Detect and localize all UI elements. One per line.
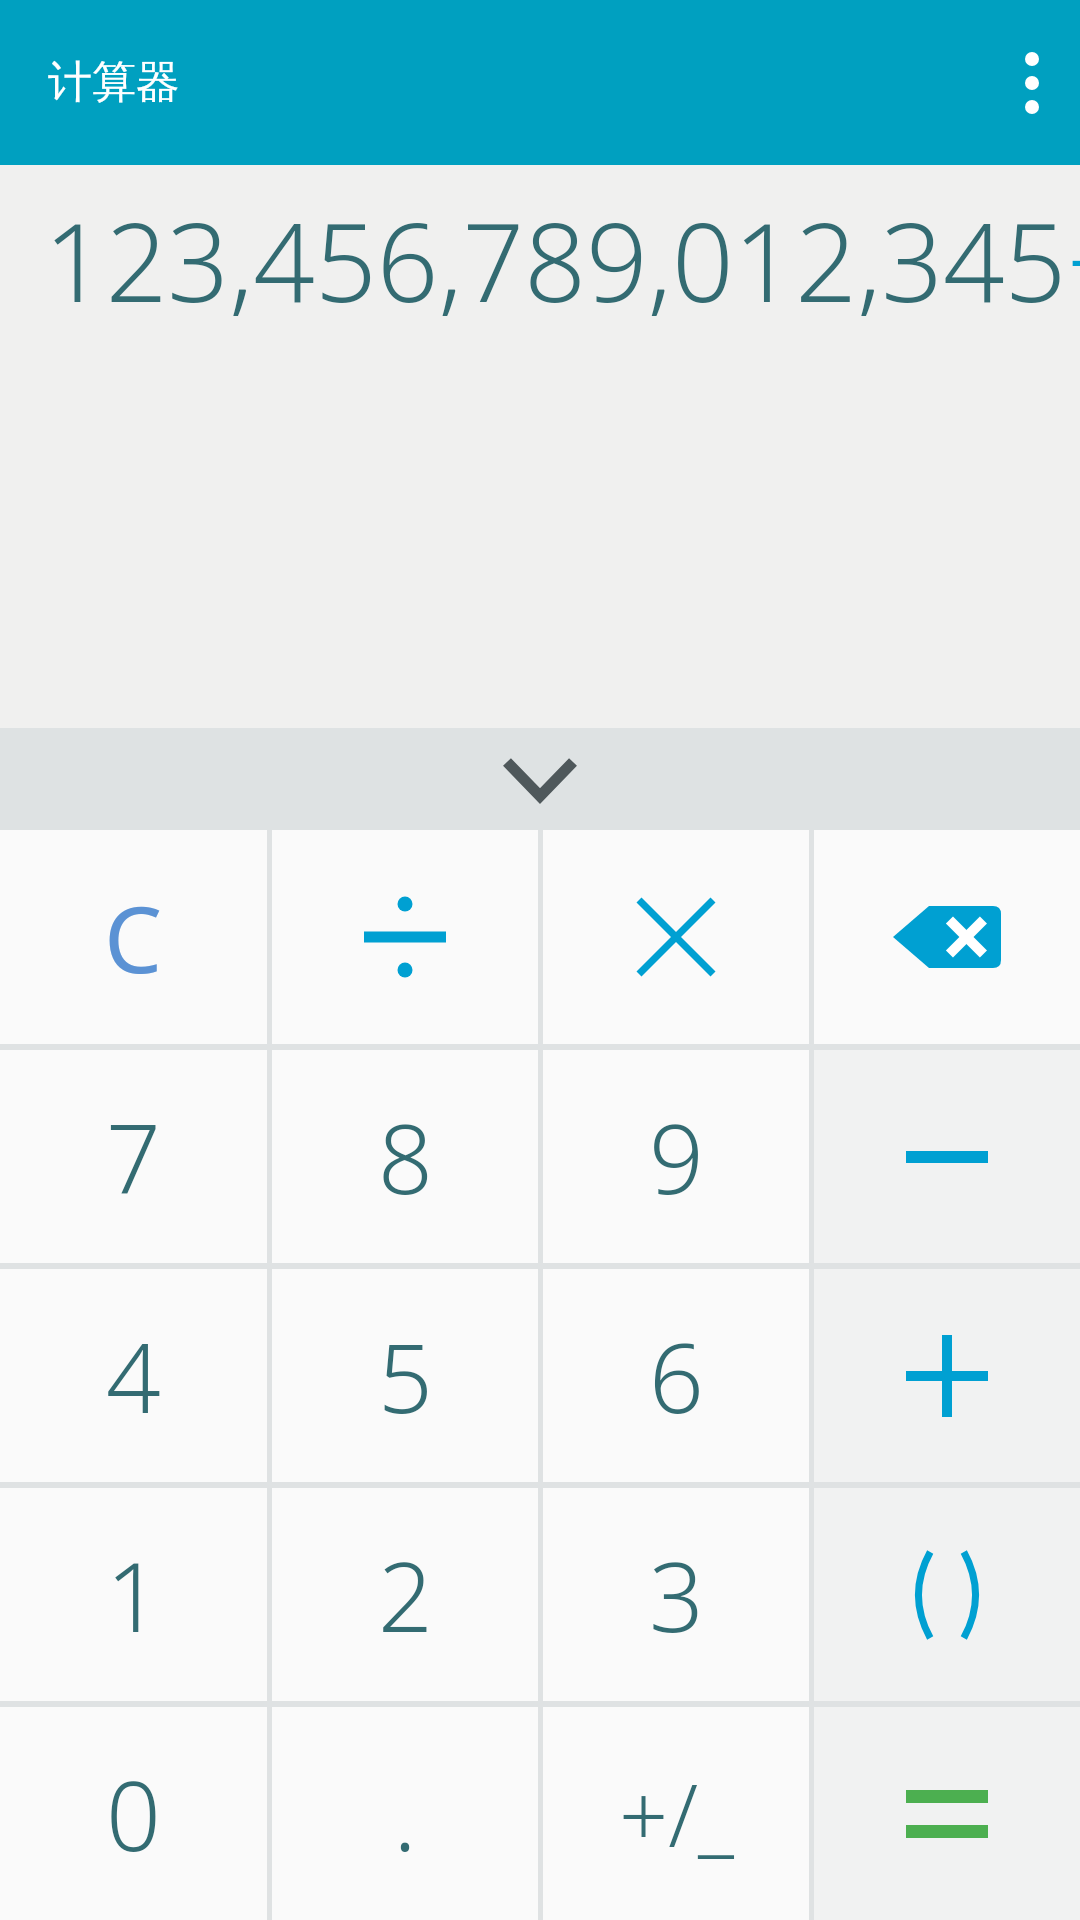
- button[interactable]: 4: [0, 1269, 267, 1482]
- staticText: 1: [106, 1529, 161, 1660]
- button[interactable]: 7: [0, 1050, 267, 1263]
- staticText: 9: [649, 1091, 704, 1222]
- staticText: 0: [106, 1748, 161, 1879]
- button[interactable]: Clear: [0, 830, 267, 1044]
- button[interactable]: Minus: [814, 1050, 1080, 1263]
- staticText: 8: [378, 1091, 433, 1222]
- button[interactable]: 6: [543, 1269, 809, 1482]
- staticText: 2: [378, 1529, 433, 1660]
- staticText: +/_: [619, 1755, 734, 1872]
- button[interactable]: Plus: [814, 1269, 1080, 1482]
- button[interactable]: 9: [543, 1050, 809, 1263]
- staticText: .: [393, 1748, 417, 1879]
- button[interactable]: 5: [272, 1269, 538, 1482]
- button[interactable]: 2: [272, 1488, 538, 1701]
- staticText: 5: [378, 1310, 433, 1441]
- button[interactable]: Backspace: [814, 830, 1080, 1044]
- staticText: +: [1067, 187, 1080, 334]
- staticText: 4: [106, 1310, 161, 1441]
- staticText: 123,456,789,012,345: [44, 187, 1067, 334]
- staticText: 6: [649, 1310, 704, 1441]
- button[interactable]: 0: [0, 1707, 267, 1920]
- button[interactable]: .: [272, 1707, 538, 1920]
- button[interactable]: Parentheses: [814, 1488, 1080, 1701]
- button[interactable]: More options: [984, 0, 1080, 165]
- staticText: 3: [649, 1529, 704, 1660]
- button[interactable]: Divide: [272, 830, 538, 1044]
- button[interactable]: Multiply: [543, 830, 809, 1044]
- button[interactable]: Collapse history: [0, 728, 1080, 830]
- staticText: C: [104, 875, 163, 1000]
- button[interactable]: +/_: [543, 1707, 809, 1920]
- button[interactable]: 8: [272, 1050, 538, 1263]
- staticText: 计算器: [48, 55, 180, 110]
- button[interactable]: 1: [0, 1488, 267, 1701]
- button[interactable]: 3: [543, 1488, 809, 1701]
- button[interactable]: Equals: [814, 1707, 1080, 1920]
- staticText: 7: [106, 1091, 161, 1222]
